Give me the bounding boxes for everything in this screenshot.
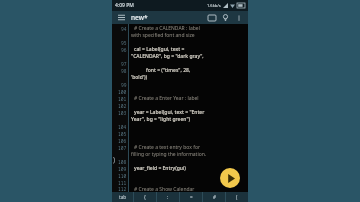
staticText: 97 (121, 61, 127, 67)
staticText: with specified font and size (131, 32, 195, 39)
button[interactable]: tab (112, 192, 133, 202)
staticText: year_field = Entry(gui) (134, 165, 186, 172)
staticText: ( (236, 194, 238, 200)
staticText: 105 (118, 131, 127, 137)
staticText: 1.6kb/s (207, 3, 221, 8)
staticText: = (190, 194, 193, 200)
staticText: 109 (118, 166, 127, 172)
button[interactable]: Run (220, 168, 240, 188)
staticText: 111 (118, 180, 127, 186)
staticText: 4:09 PM (115, 2, 134, 9)
staticText: 108 (118, 159, 127, 165)
staticText: 107 (118, 145, 127, 151)
button[interactable]: Menu (116, 12, 127, 23)
staticText: 'bold')) (131, 74, 148, 81)
staticText: 106 (118, 138, 127, 144)
staticText: : (167, 194, 169, 200)
button[interactable]: More options (233, 12, 244, 23)
button[interactable]: : (157, 192, 179, 202)
staticText: 112 (118, 186, 127, 192)
staticText: { (144, 194, 146, 200)
button[interactable]: Tabs (206, 12, 217, 23)
staticText: 95 (121, 40, 127, 46)
staticText: 101 (118, 96, 127, 102)
staticText: Year", bg = "light green") (131, 116, 191, 123)
staticText: "CALENDAR", bg = "dark gray", (131, 53, 204, 60)
staticText: # Create a Enter Year : label (134, 95, 199, 102)
staticText: 110 (118, 173, 127, 179)
staticText: ) (113, 155, 116, 165)
staticText: year = Label(gui, text = "Enter (134, 109, 205, 116)
staticText: 104 (118, 124, 127, 130)
staticText: 99 (121, 82, 127, 88)
staticText: cal = Label(gui, text = (134, 46, 185, 53)
button[interactable]: = (180, 192, 202, 202)
staticText: tab (119, 194, 127, 200)
staticText: # (213, 194, 216, 200)
staticText: # Create a CALENDAR : label (134, 25, 200, 32)
button[interactable]: ( (226, 192, 248, 202)
staticText: 96 (121, 47, 127, 53)
staticText: 94 (121, 26, 127, 32)
button[interactable]: # (203, 192, 225, 202)
staticText: new* (131, 13, 206, 22)
button[interactable]: { (134, 192, 156, 202)
staticText: 98 (121, 68, 127, 74)
staticText: 102 (118, 103, 127, 109)
staticText: 100 (118, 89, 127, 95)
staticText: 103 (118, 110, 127, 116)
staticText: filling or typing the information. (131, 151, 207, 158)
staticText: # Create a text entry box for (134, 144, 200, 151)
staticText: font = ("times", 28, (146, 67, 191, 74)
button[interactable]: Hints (220, 12, 231, 23)
staticText: # Create a Show Calendar (134, 186, 195, 192)
